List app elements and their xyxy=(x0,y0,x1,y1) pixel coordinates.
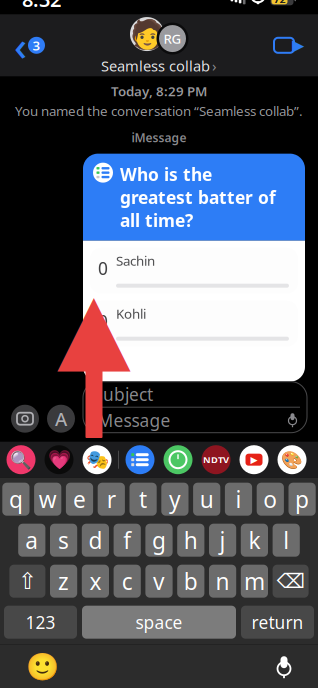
staticText: v xyxy=(153,566,165,596)
button[interactable]: f xyxy=(114,524,141,557)
staticText: ⌫ xyxy=(277,570,305,593)
button[interactable]: Clock app xyxy=(159,443,197,477)
button[interactable]: a xyxy=(18,524,45,557)
button[interactable]: Apps xyxy=(47,405,75,433)
staticText: i xyxy=(235,484,241,514)
button[interactable]: i xyxy=(225,483,252,516)
staticText: m xyxy=(244,566,265,596)
button[interactable]: return xyxy=(241,606,314,639)
button[interactable]: j xyxy=(209,524,236,557)
staticText: 123 xyxy=(25,611,55,634)
staticText: 💗 xyxy=(47,449,70,470)
staticText: Subject xyxy=(93,383,153,406)
staticText: s xyxy=(58,525,69,555)
button[interactable]: Photos search xyxy=(2,443,40,477)
button[interactable]: Delete xyxy=(273,565,309,598)
button[interactable]: p xyxy=(288,483,316,516)
staticText: iMessage xyxy=(93,409,170,432)
staticText: 🔍 xyxy=(10,450,32,470)
button[interactable]: 0 xyxy=(90,301,298,347)
button[interactable]: FaceTime xyxy=(260,23,318,67)
button[interactable]: v xyxy=(145,565,173,598)
staticText: ▲ xyxy=(57,272,131,381)
staticText: Who is the greatest batter of all time? xyxy=(120,163,276,232)
button[interactable]: Dictation xyxy=(264,656,304,678)
staticText: ⇧ xyxy=(18,568,37,594)
button[interactable]: u xyxy=(193,483,220,516)
button[interactable]: e xyxy=(66,483,93,516)
staticText: iMessage xyxy=(131,130,186,146)
button[interactable]: NDTV xyxy=(197,443,235,477)
staticText: 🎨 xyxy=(281,450,303,470)
staticText: 🙂 xyxy=(26,652,59,682)
button[interactable]: l xyxy=(273,524,300,557)
button[interactable]: Back, 3 unread xyxy=(0,23,59,67)
button[interactable]: z xyxy=(50,565,77,598)
staticText: w xyxy=(39,484,57,514)
staticText: u xyxy=(200,484,214,514)
staticText: ‹ xyxy=(14,19,27,72)
button[interactable]: r xyxy=(98,483,125,516)
button[interactable]: b xyxy=(177,565,204,598)
button[interactable]: Who is the greatest batter of all time? xyxy=(83,154,305,382)
staticText: d xyxy=(88,525,102,555)
button[interactable]: g xyxy=(145,524,173,557)
staticText: ▶ xyxy=(250,454,257,465)
staticText: x xyxy=(89,566,101,596)
button[interactable]: More apps xyxy=(273,443,311,477)
button[interactable]: x xyxy=(82,565,109,598)
staticText: p xyxy=(295,484,309,514)
staticText: l xyxy=(283,525,289,555)
staticText: k xyxy=(248,525,260,555)
button[interactable]: Polls xyxy=(121,443,159,477)
button[interactable]: n xyxy=(209,565,236,598)
button[interactable]: w xyxy=(34,483,61,516)
staticText: b xyxy=(184,566,198,596)
staticText: 🧑 xyxy=(129,18,164,50)
staticText: 🎭 xyxy=(85,449,108,470)
button[interactable]: space xyxy=(82,606,236,639)
button[interactable]: s xyxy=(50,524,77,557)
staticText: e xyxy=(73,484,86,514)
staticText: f xyxy=(123,525,131,555)
staticText: Seamless collab xyxy=(101,56,210,76)
button[interactable]: Shift xyxy=(9,565,45,598)
staticText: y xyxy=(169,484,181,514)
button[interactable]: 0 xyxy=(90,248,298,294)
staticText: c xyxy=(122,566,133,596)
staticText: q xyxy=(9,484,23,514)
button[interactable]: o xyxy=(257,483,284,516)
staticText: return xyxy=(251,611,303,634)
staticText: g xyxy=(152,525,166,555)
staticText: Today, 8:29 PM xyxy=(111,82,207,100)
staticText: 0 xyxy=(98,257,108,280)
staticText: › xyxy=(212,56,217,76)
staticText: Sachin xyxy=(116,252,155,269)
button[interactable]: h xyxy=(177,524,204,557)
staticText: j xyxy=(220,525,226,555)
staticText: RG xyxy=(163,30,181,47)
button[interactable]: d xyxy=(82,524,109,557)
button[interactable]: YouTube xyxy=(235,443,273,477)
staticText: a xyxy=(25,525,38,555)
button[interactable]: y xyxy=(161,483,188,516)
staticText: 3 xyxy=(32,36,40,54)
button[interactable]: q xyxy=(2,483,29,516)
button[interactable]: Camera xyxy=(11,405,39,433)
staticText: ▶ xyxy=(292,36,304,54)
staticText: h xyxy=(184,525,198,555)
button[interactable]: Emoji keyboard xyxy=(14,652,71,682)
staticText: Kohli xyxy=(116,305,146,322)
button[interactable]: k xyxy=(241,524,268,557)
staticText: A xyxy=(55,406,67,431)
staticText: t xyxy=(139,484,147,514)
button[interactable]: m xyxy=(241,565,268,598)
button[interactable]: c xyxy=(114,565,141,598)
button[interactable]: t xyxy=(129,483,157,516)
button[interactable]: Digital Touch xyxy=(40,443,78,477)
staticText: z xyxy=(58,566,69,596)
staticText: 0 xyxy=(98,310,108,333)
staticText: space xyxy=(135,611,182,634)
button[interactable]: Memoji stickers xyxy=(78,443,116,477)
button[interactable]: 123 xyxy=(4,606,77,639)
